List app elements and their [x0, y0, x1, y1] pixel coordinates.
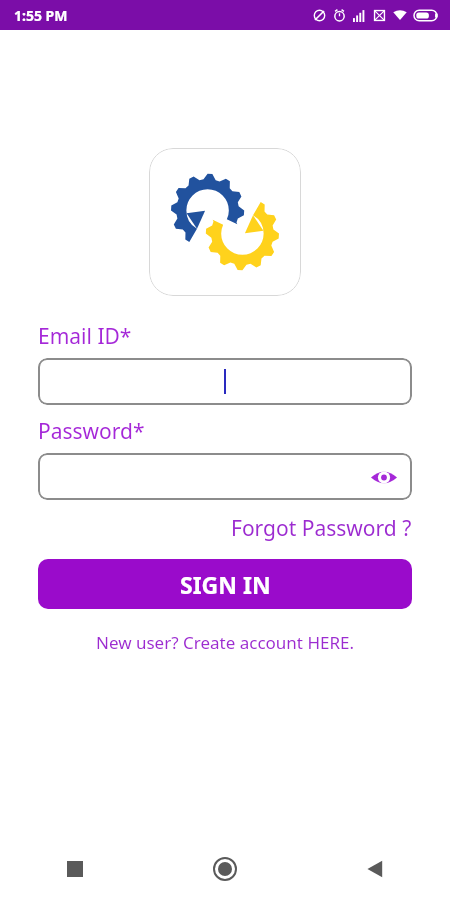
button[interactable]: Show password — [366, 459, 402, 495]
button[interactable]: Show password — [38, 453, 412, 500]
button[interactable] — [38, 358, 412, 405]
button[interactable]: Home — [150, 838, 300, 900]
button[interactable]: Forgot Password ? — [231, 514, 412, 543]
staticText: New user? Create account HERE. — [96, 631, 355, 654]
staticText: Password* — [38, 417, 145, 446]
staticText: Email ID* — [38, 322, 132, 351]
button[interactable]: Back — [300, 838, 450, 900]
button[interactable]: New user? Create account HERE. — [96, 631, 355, 654]
staticText: SIGN IN — [180, 569, 271, 600]
button[interactable]: SIGN IN — [38, 559, 412, 609]
staticText: Forgot Password ? — [231, 514, 412, 543]
button[interactable]: Recent apps — [0, 838, 150, 900]
staticText: 1:55 PM — [14, 6, 68, 25]
